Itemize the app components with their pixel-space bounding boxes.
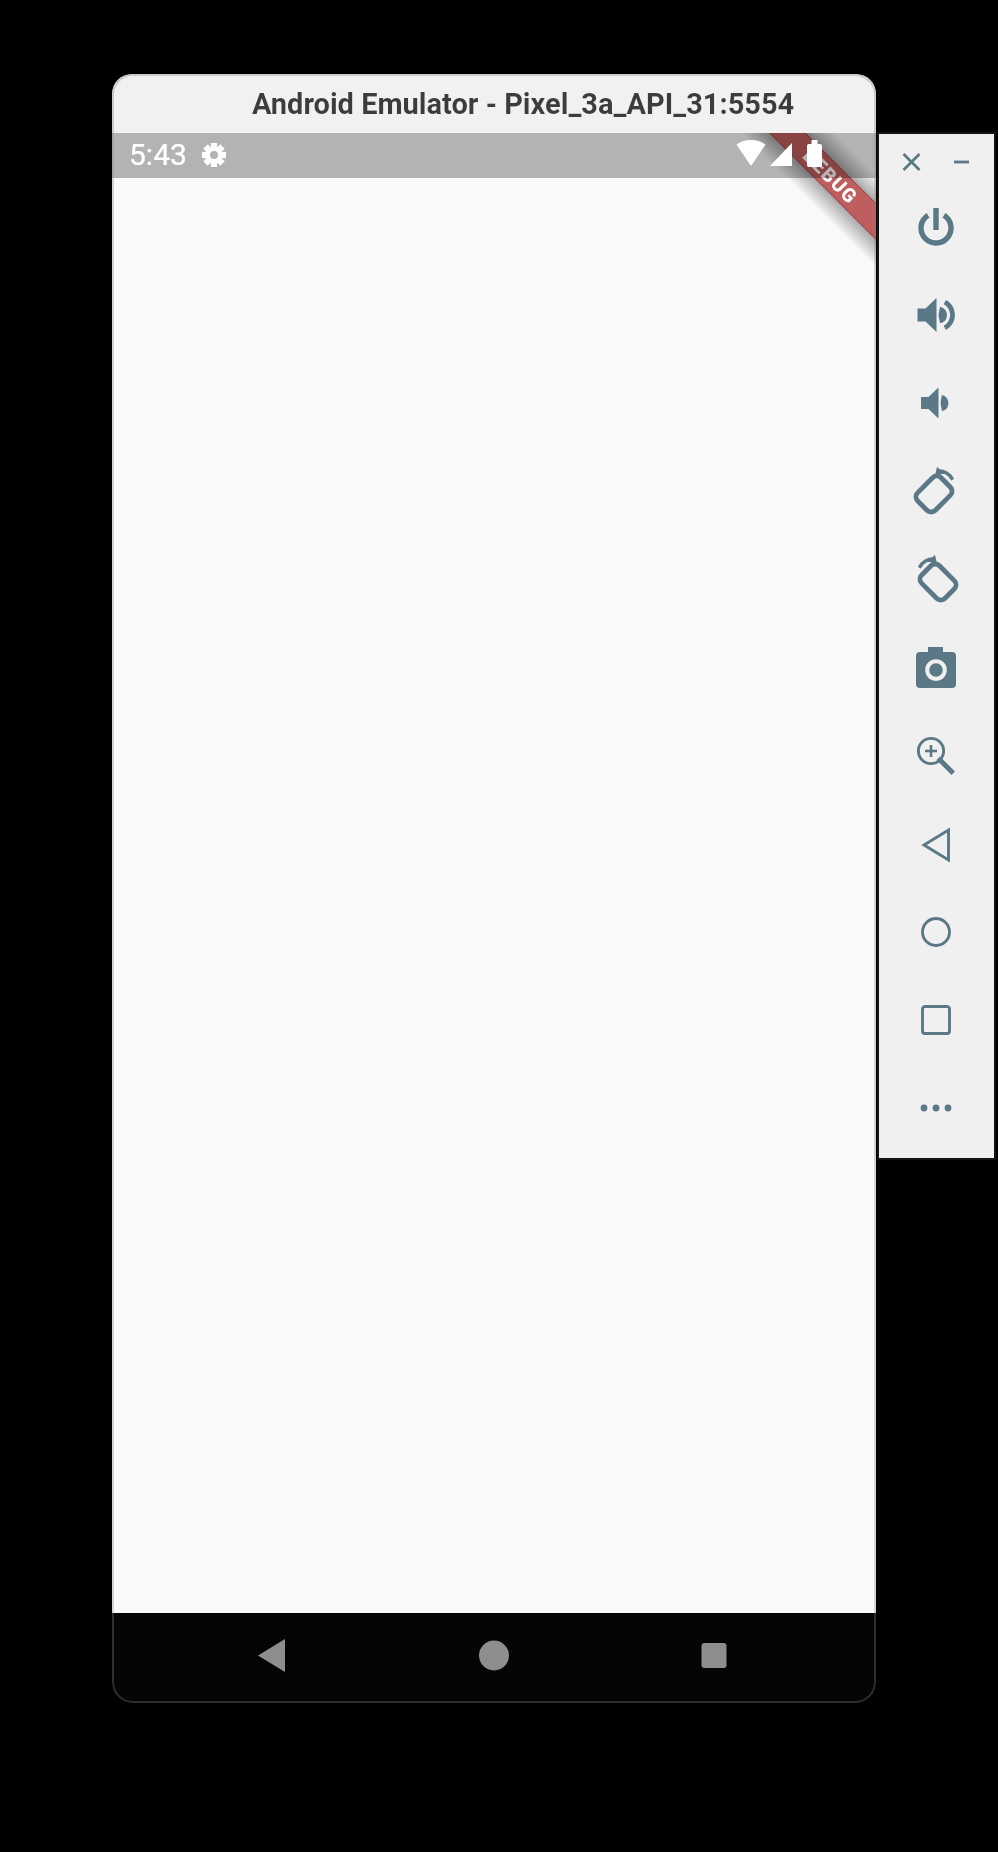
button[interactable]: [913, 909, 959, 955]
button[interactable]: [913, 1085, 959, 1131]
button[interactable]: [913, 292, 959, 338]
button[interactable]: [684, 1626, 744, 1686]
button[interactable]: [913, 645, 959, 691]
button[interactable]: [944, 144, 980, 180]
button[interactable]: [464, 1626, 524, 1686]
staticText: Android Emulator - Pixel_3a_API_31:5554: [252, 87, 795, 121]
button[interactable]: [913, 557, 959, 603]
button[interactable]: [242, 1626, 302, 1686]
staticText: 5:43: [129, 137, 187, 172]
button[interactable]: [913, 205, 959, 251]
button[interactable]: [894, 144, 930, 180]
button[interactable]: [913, 822, 959, 868]
button[interactable]: [913, 380, 959, 426]
button[interactable]: [913, 997, 959, 1043]
button[interactable]: [913, 728, 959, 774]
button[interactable]: [913, 469, 959, 515]
